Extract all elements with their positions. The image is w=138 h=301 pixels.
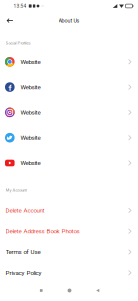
button[interactable]: Privacy Policy [0, 262, 138, 283]
button[interactable]: Recent apps [33, 284, 49, 297]
staticText: Website [20, 134, 40, 141]
button[interactable]: Website [0, 100, 138, 125]
staticText: ··· [41, 3, 44, 9]
button[interactable]: Website [0, 49, 138, 74]
staticText: Delete Address Book Photos [6, 228, 80, 235]
button[interactable]: Website [0, 74, 138, 100]
button[interactable]: Website [0, 125, 138, 150]
button[interactable]: Terms of Use [0, 242, 138, 262]
staticText: Website [20, 58, 40, 65]
button[interactable]: Home [61, 284, 77, 297]
button[interactable]: Back [90, 284, 106, 297]
staticText: Website [20, 109, 40, 116]
staticText: Website [20, 83, 40, 91]
staticText: My Account [6, 188, 27, 193]
button[interactable]: Website [0, 150, 138, 176]
staticText: About Us [58, 17, 79, 24]
staticText: Delete Account [6, 207, 45, 214]
button[interactable]: Delete Address Book Photos [0, 221, 138, 242]
button[interactable]: Delete Account [0, 200, 138, 221]
staticText: Website [20, 159, 40, 167]
staticText: Privacy Policy [6, 269, 42, 276]
button[interactable]: Back [2, 13, 18, 29]
staticText: Terms of Use [6, 248, 41, 256]
staticText: 13:54 [14, 3, 27, 9]
staticText: Social Profiles [6, 40, 31, 45]
